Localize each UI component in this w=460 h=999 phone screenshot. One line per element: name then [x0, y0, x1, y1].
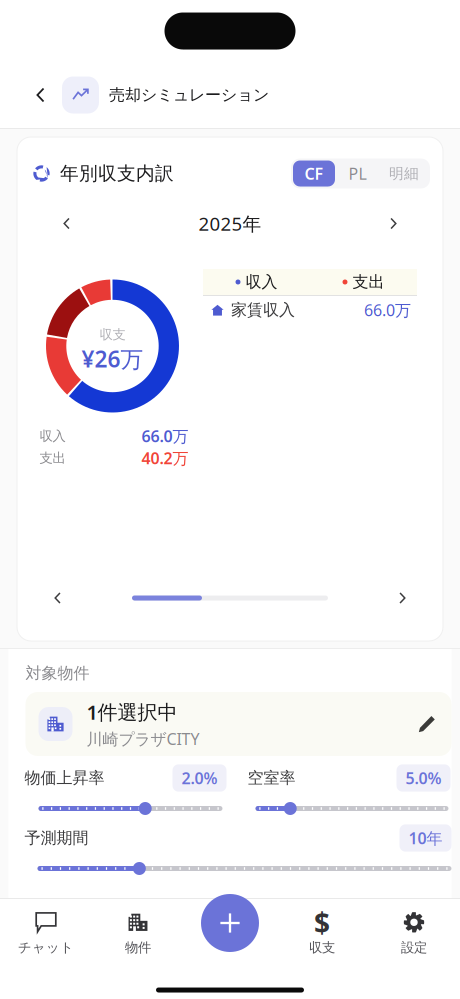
button[interactable]: 1件選択中 [25, 692, 451, 756]
button[interactable]: Previous page [43, 583, 73, 613]
staticText: チャット [18, 939, 74, 956]
button[interactable]: 明細 [380, 160, 428, 186]
staticText: 川崎プラザCITY [86, 728, 199, 749]
staticText: 年別収支内訳 [60, 162, 174, 185]
staticText: 1件選択中 [86, 699, 177, 725]
button[interactable]: Previous year [50, 206, 84, 240]
staticText: 予測期間 [24, 828, 88, 848]
staticText: 66.0万 [364, 299, 411, 321]
button[interactable]: 物件 [92, 904, 184, 962]
staticText: 物件 [125, 939, 151, 956]
staticText: 収支 [309, 939, 335, 956]
staticText: 支出 [39, 450, 65, 466]
staticText: 収入 [245, 272, 277, 292]
button[interactable]: Next page [387, 583, 417, 613]
button[interactable]: $ [276, 904, 368, 962]
button[interactable]: PL [335, 160, 380, 186]
staticText: 10年 [408, 827, 442, 849]
staticText: 66.0万 [141, 425, 188, 447]
staticText: 支出 [352, 272, 384, 292]
button[interactable]: 設定 [368, 904, 460, 962]
staticText: ¥26万 [81, 344, 143, 374]
staticText: 5.0% [405, 767, 441, 789]
staticText: 収支 [99, 326, 125, 343]
staticText: 空室率 [247, 768, 295, 788]
staticText: 対象物件 [25, 663, 89, 683]
staticText: 2.0% [181, 767, 217, 789]
staticText: 40.2万 [141, 447, 188, 469]
staticText: 明細 [389, 164, 419, 182]
staticText: 物価上昇率 [24, 768, 104, 788]
staticText: 2025年 [198, 211, 261, 236]
staticText: 設定 [401, 939, 427, 956]
button[interactable]: Next year [376, 206, 410, 240]
button[interactable]: Back [20, 72, 62, 118]
staticText: CF [304, 163, 323, 184]
staticText: PL [348, 163, 366, 184]
button[interactable]: チャット [0, 904, 92, 962]
staticText: 収入 [39, 428, 65, 444]
staticText: 売却シミュレーション [109, 85, 269, 105]
button[interactable]: Add [201, 894, 259, 952]
staticText: $ [314, 904, 330, 941]
staticText: 家賃収入 [231, 300, 295, 320]
button[interactable]: CF [293, 160, 335, 186]
